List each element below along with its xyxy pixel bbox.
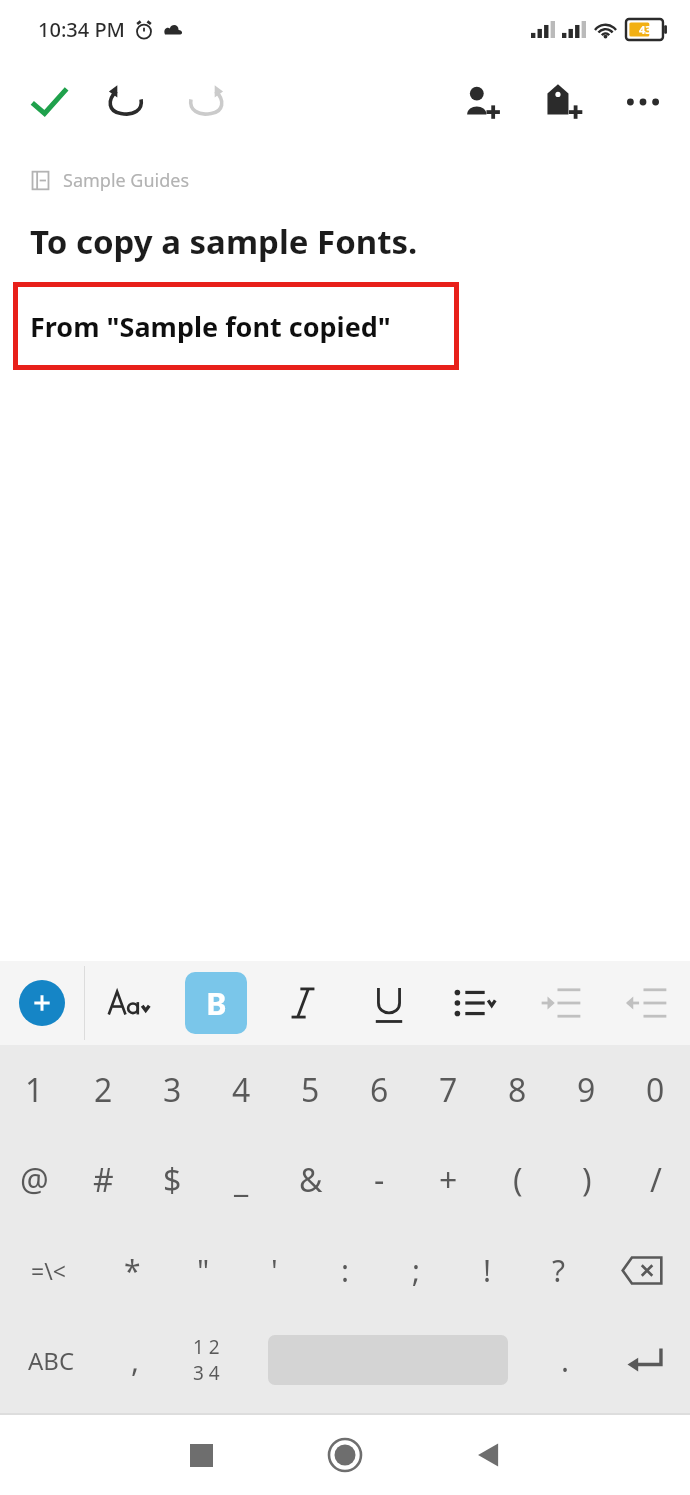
button[interactable]: ;	[381, 1225, 452, 1315]
button[interactable]: Italic	[259, 961, 346, 1045]
staticText: 4	[232, 1068, 251, 1112]
staticText: ?	[552, 1250, 566, 1291]
button[interactable]: Decrease indent	[604, 961, 690, 1045]
button[interactable]: Backspace	[594, 1225, 690, 1315]
staticText: From "Sample font copied"	[30, 308, 391, 345]
button[interactable]: ?	[523, 1225, 594, 1315]
button[interactable]: ,	[102, 1315, 169, 1405]
staticText: Sample Guides	[63, 168, 190, 193]
staticText: To copy a sample Fonts.	[30, 219, 418, 264]
staticText: ,	[131, 1340, 140, 1381]
staticText: *	[124, 1250, 141, 1291]
button[interactable]: Back	[447, 1415, 531, 1495]
button[interactable]: &	[276, 1135, 345, 1225]
button[interactable]: Font	[85, 961, 172, 1045]
staticText: 43	[639, 22, 652, 37]
staticText: #	[93, 1158, 114, 1202]
staticText: 3 4	[193, 1360, 220, 1386]
button[interactable]: Sample Guides	[30, 168, 190, 193]
button[interactable]: Bulleted list	[432, 961, 518, 1045]
button[interactable]: 3	[138, 1045, 207, 1135]
button[interactable]: Numbers	[169, 1315, 243, 1405]
staticText: 8	[508, 1068, 527, 1112]
staticText: $	[163, 1158, 182, 1202]
button[interactable]: 5	[276, 1045, 345, 1135]
staticText: /	[650, 1158, 662, 1202]
button[interactable]: +	[414, 1135, 483, 1225]
button[interactable]: Bold	[172, 961, 259, 1045]
button[interactable]: Undo	[98, 73, 156, 131]
button[interactable]: Underline	[346, 961, 432, 1045]
button[interactable]: ABC	[0, 1315, 102, 1405]
button[interactable]: :	[310, 1225, 381, 1315]
staticText: !	[483, 1250, 492, 1291]
button[interactable]: 8	[483, 1045, 552, 1135]
button[interactable]: Insert	[0, 961, 84, 1045]
button[interactable]: 1	[0, 1045, 69, 1135]
button[interactable]: )	[552, 1135, 621, 1225]
button[interactable]: Home	[303, 1415, 387, 1495]
staticText: 3	[163, 1068, 182, 1112]
button[interactable]: 7	[414, 1045, 483, 1135]
staticText: _	[234, 1158, 249, 1202]
staticText: "	[197, 1250, 210, 1291]
staticText: 5	[301, 1068, 320, 1112]
button[interactable]: Enter	[599, 1315, 690, 1405]
staticText: =\<	[31, 1255, 66, 1286]
staticText: +	[439, 1158, 458, 1202]
button[interactable]: @	[0, 1135, 69, 1225]
button[interactable]: From "Sample font copied"	[13, 282, 459, 370]
staticText: 7	[439, 1068, 458, 1112]
staticText: (	[513, 1158, 523, 1202]
button[interactable]: 0	[621, 1045, 690, 1135]
button[interactable]: $	[138, 1135, 207, 1225]
button[interactable]: More options	[614, 73, 672, 131]
staticText: 0	[646, 1068, 665, 1112]
button[interactable]: Done	[20, 73, 78, 131]
staticText: 9	[577, 1068, 596, 1112]
button[interactable]: 9	[552, 1045, 621, 1135]
staticText: -	[374, 1158, 385, 1202]
button[interactable]: _	[207, 1135, 276, 1225]
button[interactable]: Add tag	[534, 73, 592, 131]
button[interactable]: -	[345, 1135, 414, 1225]
staticText: 1	[25, 1068, 44, 1112]
button[interactable]: 6	[345, 1045, 414, 1135]
staticText: )	[582, 1158, 592, 1202]
staticText: 10:34 PM	[38, 16, 125, 43]
staticText: .	[561, 1340, 570, 1381]
button[interactable]: '	[239, 1225, 310, 1315]
button[interactable]: !	[452, 1225, 523, 1315]
button[interactable]: #	[69, 1135, 138, 1225]
button[interactable]: /	[621, 1135, 690, 1225]
button[interactable]: 4	[207, 1045, 276, 1135]
button[interactable]: =\<	[0, 1225, 97, 1315]
button[interactable]: Add person	[452, 73, 510, 131]
button[interactable]: *	[97, 1225, 168, 1315]
staticText: :	[341, 1250, 350, 1291]
button[interactable]: 2	[69, 1045, 138, 1135]
staticText: 6	[370, 1068, 389, 1112]
button[interactable]: "	[168, 1225, 239, 1315]
button[interactable]: Redo	[176, 73, 234, 131]
staticText: B	[206, 982, 227, 1024]
button[interactable]: Recents	[159, 1415, 243, 1495]
staticText: &	[299, 1158, 323, 1202]
button[interactable]: .	[532, 1315, 599, 1405]
staticText: 1 2	[193, 1334, 220, 1360]
staticText: ABC	[28, 1344, 75, 1377]
button[interactable]: (	[483, 1135, 552, 1225]
staticText: '	[271, 1250, 278, 1291]
button[interactable]: Increase indent	[518, 961, 604, 1045]
button[interactable]: Space	[243, 1315, 532, 1405]
staticText: @	[20, 1158, 49, 1202]
staticText: 2	[94, 1068, 113, 1112]
staticText: ;	[412, 1250, 421, 1291]
